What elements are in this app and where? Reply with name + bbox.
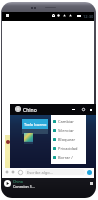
staticText: Bloquear <box>58 137 76 142</box>
staticText: Silenciar fondo <box>58 128 86 133</box>
staticText: 12:30 <box>83 14 94 19</box>
button[interactable]: Send voice message <box>87 170 92 175</box>
staticText: Chino <box>23 107 37 114</box>
button[interactable]: Chino <box>4 178 93 189</box>
button[interactable]: Escribe algo... <box>25 169 85 175</box>
button[interactable]: Attach <box>5 170 9 174</box>
staticText: Chino <box>13 179 23 184</box>
button[interactable]: Silenciar fondo <box>51 126 86 135</box>
button[interactable]: Borrar / Elimin... <box>51 153 86 162</box>
staticText: Privacidad <box>58 146 78 151</box>
button[interactable]: Chino <box>10 104 96 115</box>
button[interactable]: Maximize <box>82 108 85 111</box>
staticText: Cambiar fondo <box>58 119 86 124</box>
button[interactable]: Attach <box>11 170 15 174</box>
staticText: Borrar / Elimin... <box>58 155 86 160</box>
button[interactable]: Cambiar fondo <box>51 117 86 126</box>
button[interactable]: Emoji <box>18 170 23 175</box>
staticText: Escribe algo... <box>27 170 53 175</box>
button[interactable]: Bloquear <box>51 135 86 144</box>
staticText: Conexion S... <box>13 184 35 189</box>
button[interactable]: Privacidad <box>51 144 86 153</box>
staticText: Todo bueno tio <box>24 122 48 127</box>
